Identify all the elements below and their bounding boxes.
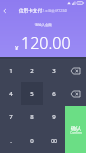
staticText: 9 (52, 113, 56, 121)
staticText: 信用卡支付 (19, 8, 42, 14)
button[interactable]: 1 (0, 59, 21, 82)
staticText: 0 (30, 137, 34, 145)
staticText: 120.00 (21, 32, 71, 54)
staticText: Confirm (70, 131, 82, 135)
staticText: . (10, 137, 12, 145)
staticText: 请输入金额 (33, 22, 54, 27)
button[interactable]: 7 (0, 105, 21, 129)
button[interactable]: Backspace (65, 82, 86, 106)
button[interactable]: 5 (21, 82, 43, 105)
button[interactable]: 00 (43, 129, 65, 153)
button[interactable]: . (0, 129, 21, 153)
staticText: 1 (9, 67, 13, 75)
button[interactable]: 3 (43, 59, 65, 82)
staticText: 00 (51, 138, 57, 145)
button[interactable]: 确认 (65, 106, 86, 153)
button[interactable]: Back (0, 6, 10, 16)
staticText: 7 (9, 113, 13, 121)
button[interactable]: 6 (43, 82, 65, 105)
button[interactable]: 4 (0, 82, 21, 105)
button[interactable]: 9 (43, 105, 65, 129)
staticText: 3 (52, 67, 56, 75)
button[interactable]: 2 (21, 59, 43, 82)
button[interactable]: Backspace (65, 59, 86, 82)
staticText: / 工商银行(1234) (42, 9, 67, 13)
staticText: 5 (30, 90, 34, 98)
button[interactable]: 8 (21, 105, 43, 129)
staticText: 4 (9, 90, 13, 98)
staticText: 2 (30, 67, 34, 75)
staticText: ¥ (15, 44, 19, 52)
staticText: 8 (30, 113, 34, 121)
staticText: 6 (52, 90, 56, 98)
button[interactable]: 0 (21, 129, 43, 153)
staticText: 确认 (71, 125, 81, 131)
